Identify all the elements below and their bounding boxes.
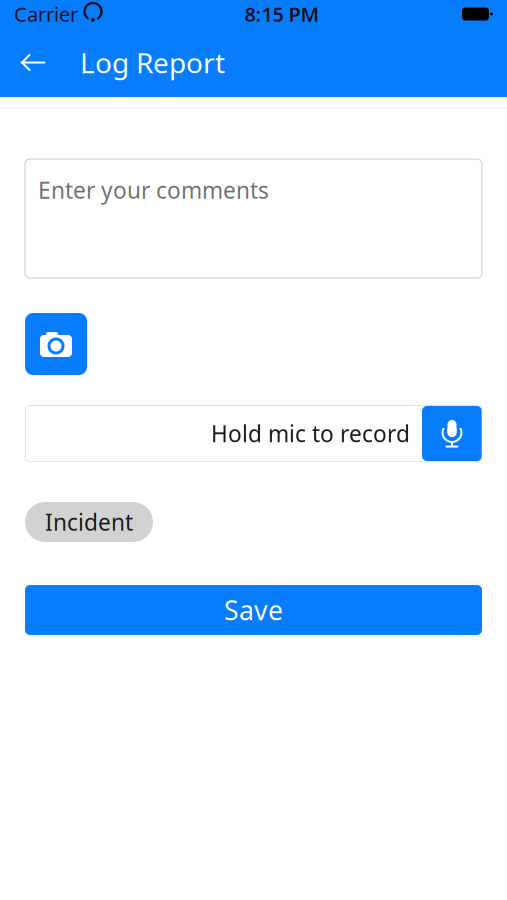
staticText: Log Report	[80, 44, 225, 81]
button[interactable]: Incident	[25, 502, 153, 542]
button[interactable]: Save	[25, 585, 482, 635]
staticText: Hold mic to record	[211, 418, 410, 448]
staticText: Save	[224, 592, 283, 628]
staticText: Carrier	[14, 1, 78, 27]
button[interactable]: Take photo	[25, 313, 87, 375]
staticText: Enter your comments	[38, 175, 269, 205]
staticText: Incident	[45, 507, 133, 537]
staticText: 8:15 PM	[244, 1, 319, 27]
button[interactable]: Back	[10, 39, 56, 85]
button[interactable]: Hold mic to record	[422, 406, 482, 461]
